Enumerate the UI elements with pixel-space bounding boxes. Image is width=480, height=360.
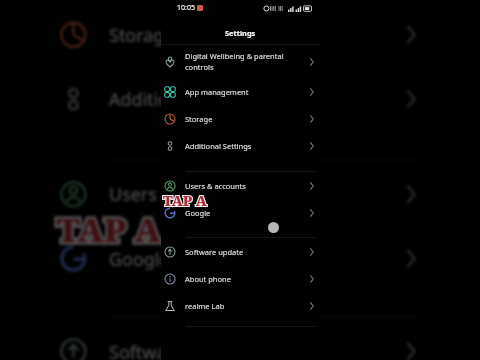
button[interactable]: Users & accounts [161, 172, 320, 199]
staticText: Additional Settings [185, 141, 306, 151]
staticText: 10:05 [177, 3, 195, 13]
staticText: Software update [109, 339, 397, 360]
button[interactable]: Software update [161, 238, 320, 265]
button[interactable]: Software update [52, 318, 430, 360]
button[interactable]: Users & accounts [52, 161, 430, 225]
button[interactable]: Digital Wellbeing & parental controls [161, 45, 320, 78]
staticText: TAP A [163, 191, 207, 210]
staticText: TAP A [57, 206, 161, 251]
button[interactable]: Google [52, 225, 430, 289]
staticText: Google [185, 208, 306, 218]
staticText: realme Lab [185, 301, 306, 311]
staticText: Users & accounts [109, 182, 397, 206]
staticText: Google [109, 247, 397, 270]
button[interactable]: Storage [52, 1, 430, 66]
button[interactable]: Additional Settings [161, 132, 320, 159]
button[interactable]: Storage [161, 105, 320, 132]
staticText: Users & accounts [185, 181, 306, 191]
staticText: TAP A [163, 191, 207, 210]
staticText: Storage [185, 114, 306, 124]
button[interactable]: App management [161, 78, 320, 105]
button[interactable]: realme Lab [161, 292, 320, 319]
staticText: Settings [225, 28, 256, 38]
staticText: TAP A [57, 206, 161, 251]
staticText: App management [185, 87, 306, 97]
staticText: Software update [185, 247, 306, 257]
button[interactable]: About phone [161, 265, 320, 292]
button[interactable]: Google [161, 199, 320, 226]
staticText: About phone [185, 274, 306, 284]
staticText: Storage [109, 23, 397, 47]
staticText: Digital Wellbeing & parental controls [185, 51, 306, 72]
staticText: Additional Settings [109, 87, 397, 111]
button[interactable]: Additional Settings [52, 66, 430, 130]
